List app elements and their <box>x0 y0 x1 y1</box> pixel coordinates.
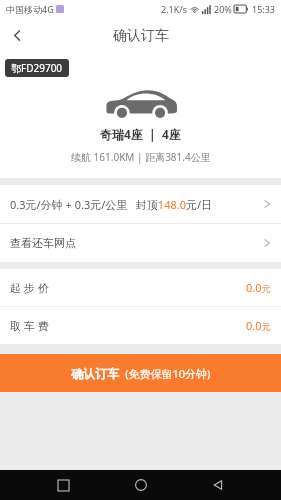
staticText: 2.1K/s <box>161 3 187 15</box>
staticText: 鄂FD29700 <box>11 61 63 75</box>
staticText: 确认订车 (免费保留10分钟) <box>71 365 211 381</box>
button[interactable]: Back <box>203 470 233 500</box>
staticText: 确认订车 <box>113 27 169 45</box>
staticText: 续航 161.0KM | 距离381.4公里 <box>71 150 211 164</box>
staticText: 0.0元 <box>246 318 271 333</box>
button[interactable]: 确认订车 (免费保留10分钟) <box>0 354 281 392</box>
staticText: 奇瑞4座 | 4座 <box>100 126 181 142</box>
staticText: 0.3元/分钟 + 0.3元/公里 封顶148.0元/日 <box>10 197 264 212</box>
staticText: 起 步 价 <box>10 280 246 295</box>
staticText: 取 车 费 <box>10 318 246 333</box>
staticText: 中国移动4G <box>6 3 54 15</box>
staticText: 15:33 <box>252 3 276 15</box>
staticText: 20% <box>214 3 232 15</box>
staticText: 0.0元 <box>246 280 271 295</box>
button[interactable]: Home <box>126 470 156 500</box>
button[interactable]: 取 车 费 <box>0 307 281 344</box>
button[interactable]: 起 步 价 <box>0 269 281 306</box>
staticText: 查看还车网点 <box>10 236 264 250</box>
button[interactable]: Recent apps <box>48 470 78 500</box>
button[interactable]: Back <box>0 18 35 53</box>
button[interactable]: 查看还车网点 <box>0 224 281 262</box>
button[interactable]: 0.3元/分钟 + 0.3元/公里 封顶148.0元/日 <box>0 185 281 223</box>
